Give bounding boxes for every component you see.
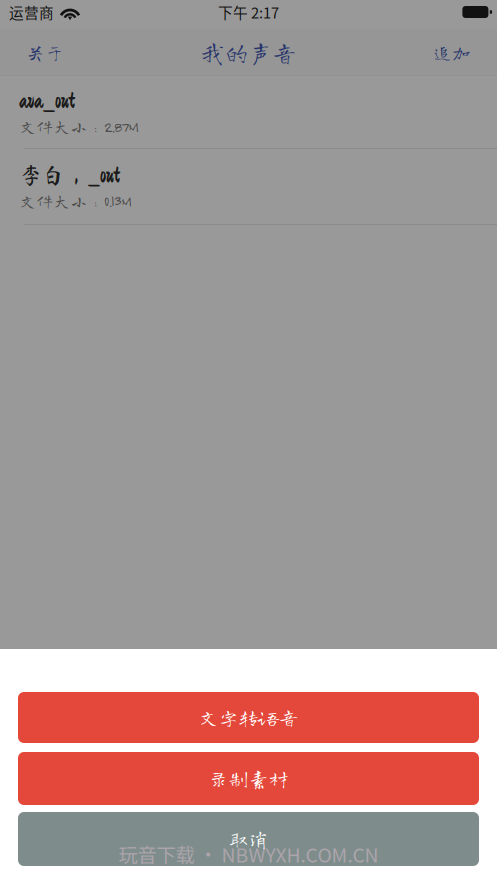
staticText: 下午 2:17 — [218, 1, 279, 23]
staticText: 李白，_out — [19, 163, 120, 186]
button[interactable]: 追加 — [420, 31, 484, 74]
staticText: 运营商 — [9, 1, 54, 23]
staticText: 文件大小：2.87M — [19, 118, 138, 135]
staticText: 玩音下载 • NBWYXH.COM.CN — [118, 840, 378, 868]
staticText: 取消 — [228, 829, 268, 849]
staticText: ava_out — [19, 89, 75, 112]
staticText: 我的声音 — [200, 40, 296, 64]
staticText: 关于 — [26, 43, 64, 62]
button[interactable]: 李白，_out — [0, 149, 497, 225]
staticText: 文件大小：0.13M — [19, 192, 131, 209]
staticText: 追加 — [433, 43, 471, 62]
button[interactable]: 取消 — [18, 812, 479, 866]
button[interactable]: 录制素材 — [18, 752, 479, 805]
button[interactable]: 关于 — [13, 31, 77, 74]
staticText: 录制素材 — [208, 768, 288, 788]
staticText: 文字转语音 — [198, 707, 298, 727]
button[interactable]: 文字转语音 — [18, 692, 479, 743]
button[interactable]: ava_out — [0, 76, 497, 149]
